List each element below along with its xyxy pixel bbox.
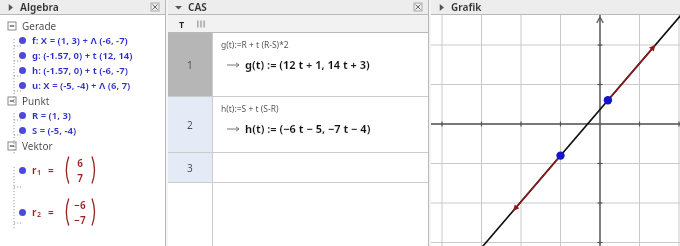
button[interactable]: Toggle CAS panel	[175, 4, 182, 11]
button[interactable]: Close Algebra panel	[149, 1, 161, 13]
button[interactable]: r	[0, 195, 165, 229]
button[interactable]: Keyboard	[196, 19, 206, 29]
button[interactable]: S = (-5, -4)	[0, 123, 165, 138]
button[interactable]: r	[0, 153, 165, 187]
button[interactable]: Text mode	[176, 18, 188, 30]
staticText: =	[48, 205, 54, 219]
staticText: 2	[37, 210, 42, 220]
staticText: −7	[74, 213, 86, 227]
staticText: Grafik	[451, 0, 482, 14]
staticText: CAS	[188, 0, 207, 14]
staticText: 7	[77, 171, 83, 185]
staticText: g: (-1.57, 0) + t (12, 14)	[32, 49, 133, 62]
button[interactable]: R = (1, 3)	[0, 108, 165, 123]
staticText: T	[179, 18, 185, 30]
button[interactable]: Toggle Algebra panel	[7, 4, 14, 11]
staticText: R = (1, 3)	[32, 109, 72, 122]
other: Collapse Punkt	[8, 97, 16, 105]
staticText: g(t):=R + t (R-S)*2	[221, 39, 289, 51]
button[interactable]: u: X = (-5, -4) + Λ (6, 7)	[0, 78, 165, 93]
staticText: h: (-1.57, 0) + t (-6, -7)	[32, 64, 128, 77]
button[interactable]: Collapse Vektor	[0, 138, 165, 153]
staticText: r	[32, 163, 37, 177]
staticText: −6	[74, 198, 86, 212]
staticText: r	[32, 205, 37, 219]
button[interactable]: 3	[168, 153, 428, 182]
button[interactable]: Collapse Punkt	[0, 93, 165, 108]
staticText: S = (-5, -4)	[32, 124, 77, 137]
staticText: h(t):=S + t (S-R)	[221, 103, 279, 115]
staticText: u: X = (-5, -4) + Λ (6, 7)	[32, 79, 131, 92]
staticText: Vektor	[22, 139, 53, 153]
staticText: 2	[187, 118, 193, 132]
button[interactable]: Toggle Grafik panel	[438, 4, 445, 11]
button[interactable]: Collapse Gerade	[0, 18, 165, 33]
staticText: h(t) := (−6 t − 5, −7 t − 4)	[245, 121, 371, 136]
button[interactable]: h: (-1.57, 0) + t (-6, -7)	[0, 63, 165, 78]
staticText: 1	[187, 58, 193, 72]
staticText: Punkt	[22, 94, 50, 108]
staticText: g(t) := (12 t + 1, 14 t + 3)	[245, 57, 370, 72]
staticText: Gerade	[22, 19, 57, 33]
other: Collapse Gerade	[8, 22, 16, 30]
button[interactable]: 1	[168, 33, 428, 96]
staticText: 1	[37, 168, 42, 178]
staticText: f: X = (1, 3) + Λ (-6, -7)	[32, 34, 128, 47]
other: Collapse Vektor	[8, 142, 16, 150]
staticText: =	[48, 163, 54, 177]
button[interactable]: g: (-1.57, 0) + t (12, 14)	[0, 48, 165, 63]
button[interactable]: 2	[168, 97, 428, 152]
staticText: 3	[187, 161, 193, 175]
staticText: Algebra	[20, 0, 59, 14]
button[interactable]: Close CAS panel	[412, 1, 424, 13]
button[interactable]: f: X = (1, 3) + Λ (-6, -7)	[0, 33, 165, 48]
staticText: 6	[77, 156, 83, 170]
